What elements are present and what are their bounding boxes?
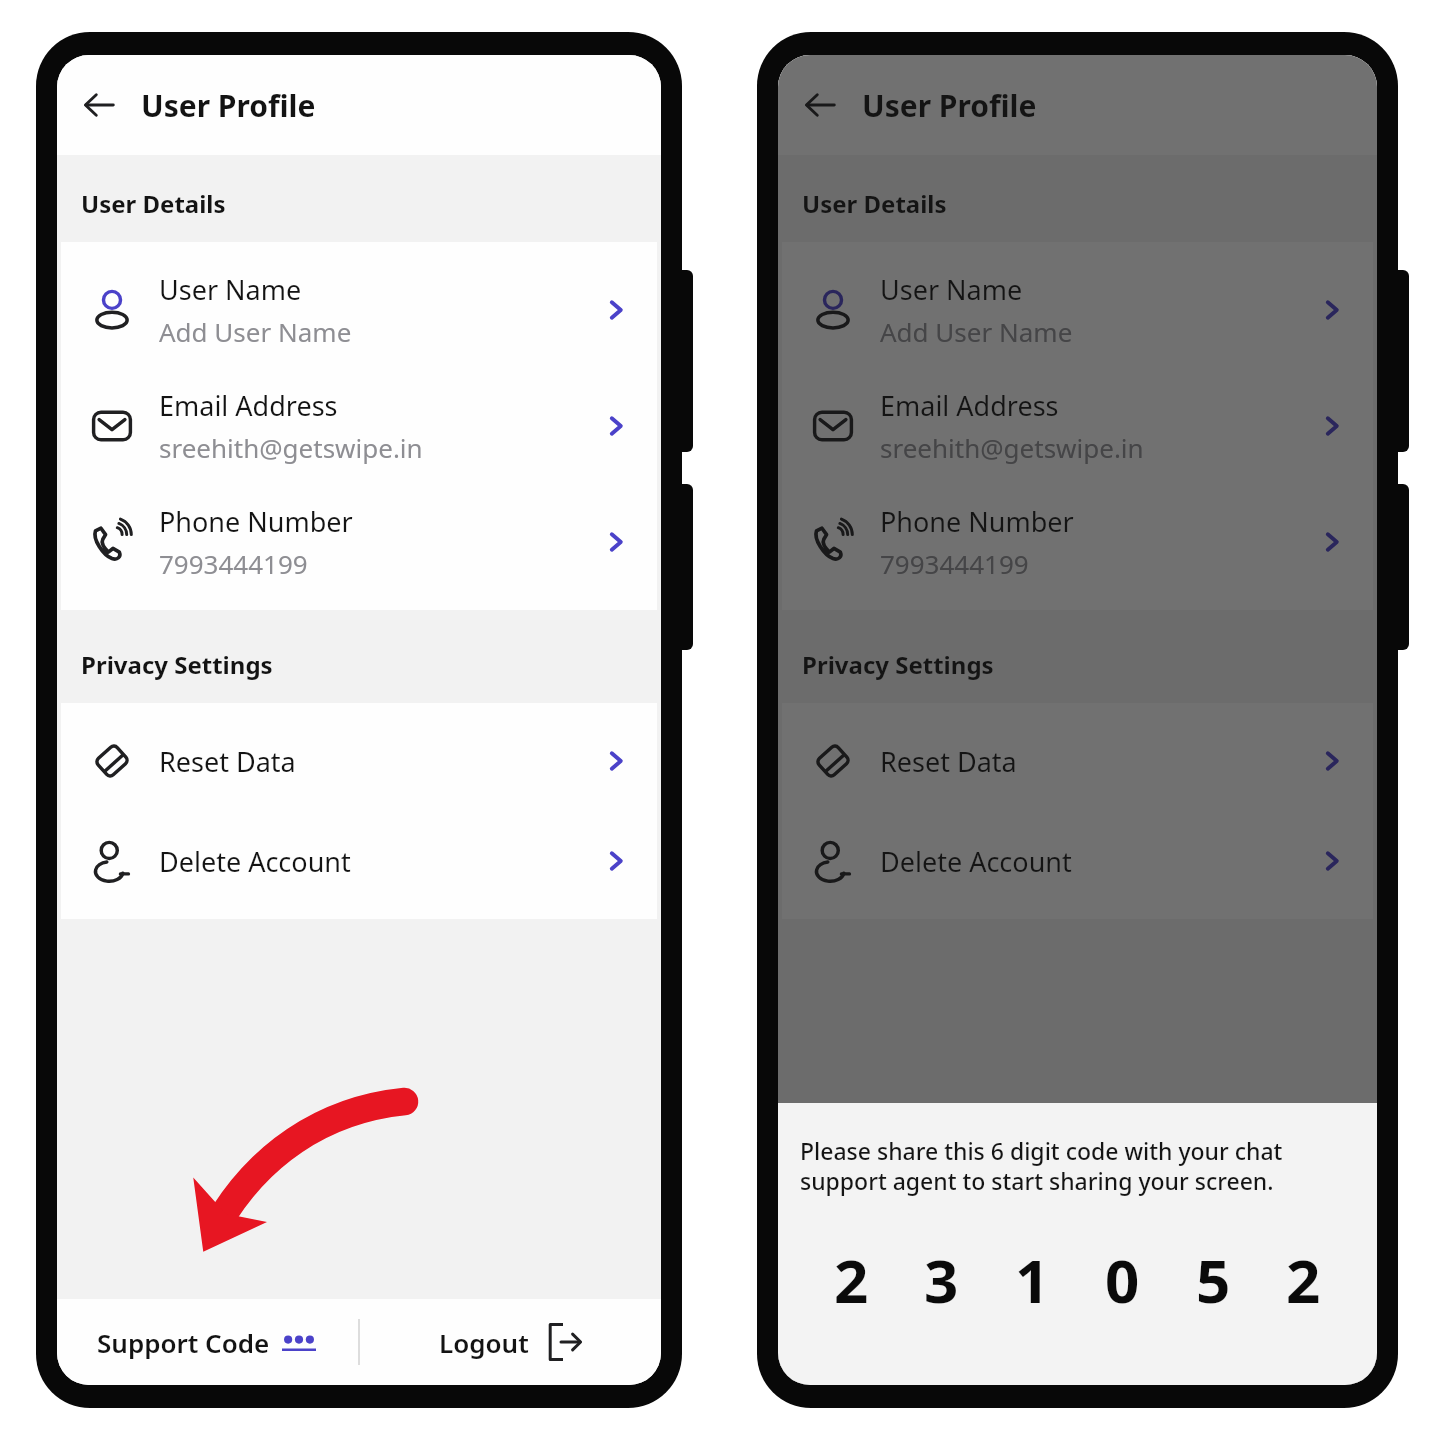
staticText: User Profile (862, 85, 1037, 126)
staticText: 0 (1105, 1239, 1140, 1321)
staticText: 7993444199 (880, 546, 1029, 581)
staticText: Email Address (159, 387, 338, 424)
staticText: 2 (1286, 1239, 1321, 1321)
staticText: Add User Name (159, 314, 352, 349)
button[interactable]: Delete Account (61, 811, 657, 911)
staticText: User Profile (141, 85, 316, 126)
staticText: User Details (81, 187, 226, 220)
staticText: Privacy Settings (802, 648, 994, 681)
staticText: Phone Number (159, 503, 353, 540)
staticText: 7993444199 (159, 546, 308, 581)
staticText: 5 (1196, 1239, 1231, 1321)
button[interactable]: Back (794, 79, 846, 131)
staticText: 2 (834, 1239, 869, 1321)
staticText: Please share this 6 digit code with your… (800, 1135, 1355, 1197)
button[interactable]: Logout (360, 1299, 661, 1385)
button[interactable]: Email Address (61, 368, 657, 484)
button[interactable]: Phone Number (61, 484, 657, 600)
button[interactable]: Email Address (782, 368, 1373, 484)
staticText: Privacy Settings (81, 648, 273, 681)
staticText: User Name (880, 271, 1023, 308)
button[interactable]: Reset Data (782, 711, 1373, 811)
staticText: Logout (439, 1325, 529, 1360)
staticText: Add User Name (880, 314, 1073, 349)
staticText: User Name (159, 271, 302, 308)
staticText: Email Address (880, 387, 1059, 424)
staticText: Phone Number (880, 503, 1074, 540)
staticText: 1 (1015, 1239, 1050, 1321)
button[interactable]: Back (73, 79, 125, 131)
button[interactable]: User Name (782, 252, 1373, 368)
staticText: Reset Data (159, 743, 601, 780)
staticText: sreehith@getswipe.in (880, 430, 1144, 465)
button[interactable]: Delete Account (782, 811, 1373, 911)
staticText: 3 (924, 1239, 959, 1321)
staticText: Delete Account (880, 843, 1317, 880)
staticText: User Details (802, 187, 947, 220)
staticText: Delete Account (159, 843, 601, 880)
button[interactable]: Support Code (57, 1299, 358, 1385)
staticText: Support Code (97, 1325, 270, 1360)
button[interactable]: Phone Number (782, 484, 1373, 600)
button[interactable]: Reset Data (61, 711, 657, 811)
staticText: Reset Data (880, 743, 1317, 780)
staticText: sreehith@getswipe.in (159, 430, 423, 465)
button[interactable]: User Name (61, 252, 657, 368)
